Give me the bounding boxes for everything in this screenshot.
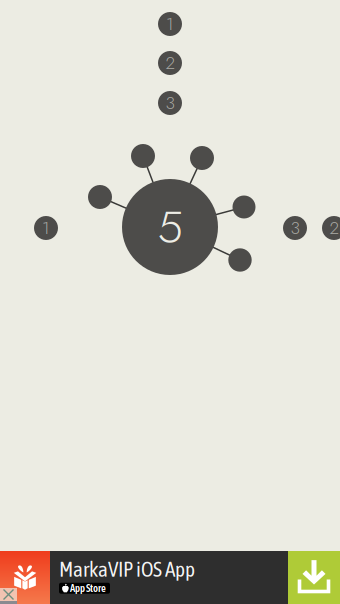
staticText: 2 [329,215,338,240]
button[interactable]: Node 5 [122,179,218,275]
staticText: 2 [165,50,174,75]
button[interactable]: Node [190,146,214,170]
button[interactable]: Close ad [0,588,17,601]
button[interactable]: Install [288,551,340,604]
button[interactable]: Node [228,248,252,272]
button[interactable]: Node 1 [158,12,182,36]
button[interactable]: Node 3 [158,91,182,115]
button[interactable]: Node 2 [322,216,340,240]
button[interactable]: Node [131,144,155,168]
button[interactable]: Node [232,195,255,218]
staticText: 3 [165,90,174,115]
button[interactable]: Node 1 [34,216,58,240]
button[interactable]: Node [88,185,112,209]
button[interactable]: Node 2 [158,51,182,75]
staticText: 1 [166,11,174,36]
staticText: 5 [157,194,182,260]
staticText: 1 [42,215,50,240]
staticText: MarkaVIP iOS App [59,557,195,581]
button[interactable]: MarkaVIP iOS App [50,551,288,604]
button[interactable]: MarkaVIP [0,551,50,604]
button[interactable]: Node 3 [283,216,307,240]
staticText: App Store [70,582,106,594]
staticText: 3 [290,215,299,240]
